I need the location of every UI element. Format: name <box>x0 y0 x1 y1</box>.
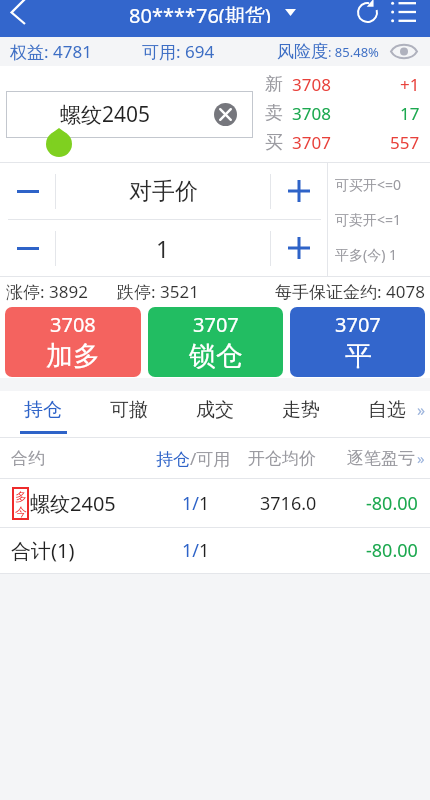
staticText: 开仓均价 <box>248 448 316 469</box>
staticText: 3707 <box>193 311 239 338</box>
staticText: 557 <box>390 131 420 154</box>
staticText: 螺纹2405 <box>60 100 151 129</box>
staticText: 每手保证金约: 4078 <box>275 280 425 303</box>
staticText: 跌停: 3521 <box>117 280 199 303</box>
staticText: 1/1 <box>182 538 210 563</box>
button[interactable]: Increase <box>271 163 327 219</box>
staticText: 80****76(期货) <box>129 2 271 23</box>
staticText: 3707 <box>292 131 331 154</box>
staticText: 1 <box>156 233 170 264</box>
staticText: 对手价 <box>129 177 198 206</box>
button[interactable]: Back <box>0 0 40 25</box>
staticText: 3708 <box>292 73 331 96</box>
staticText: 螺纹2405 <box>30 490 116 517</box>
staticText: 新 <box>265 73 283 96</box>
button[interactable]: 80****76(期货) <box>129 2 296 23</box>
staticText: 合计(1) <box>11 537 75 564</box>
staticText: 合约 <box>11 448 45 469</box>
staticText: 买 <box>265 131 283 154</box>
button[interactable]: 走势 <box>258 391 344 437</box>
button[interactable]: 螺纹2405 <box>6 91 253 138</box>
staticText: 持仓/可用 <box>156 447 231 470</box>
button[interactable]: 1 <box>56 220 270 276</box>
staticText: 锁仓 <box>189 339 243 373</box>
staticText: 逐笔盈亏 <box>347 448 415 469</box>
staticText: 涨停: 3892 <box>6 280 88 303</box>
button[interactable]: 成交 <box>172 391 258 437</box>
staticText: 持仓 <box>24 398 62 422</box>
button[interactable]: Increase <box>271 220 327 276</box>
staticText: 可撤 <box>110 398 148 422</box>
staticText: 3716.0 <box>260 491 317 516</box>
button[interactable]: Menu <box>380 0 426 24</box>
button[interactable]: Clear <box>214 103 237 126</box>
button[interactable]: 可撤 <box>86 391 172 437</box>
staticText: 成交 <box>196 398 234 422</box>
button[interactable]: 买 <box>265 128 430 157</box>
staticText: 平多(今) 1 <box>335 245 398 264</box>
staticText: 可卖开<=1 <box>335 210 402 229</box>
button[interactable]: 3707 <box>148 307 283 377</box>
button[interactable]: Decrease <box>0 220 55 276</box>
staticText: -80.00 <box>366 491 418 516</box>
staticText: 17 <box>400 102 420 125</box>
button[interactable]: 持仓 <box>0 391 86 437</box>
staticText: 自选 <box>368 398 406 422</box>
staticText: 权益: 4781 <box>10 40 92 63</box>
button[interactable]: 自选 <box>344 391 430 437</box>
staticText: 平 <box>345 339 372 373</box>
button[interactable]: 卖 <box>265 99 430 128</box>
button[interactable]: Refresh <box>355 0 380 24</box>
staticText: 1/1 <box>182 491 210 516</box>
staticText: 3708 <box>50 311 96 338</box>
button[interactable]: Toggle balance visibility <box>386 37 422 66</box>
staticText: 多 <box>15 489 27 504</box>
button[interactable]: Decrease <box>0 163 55 219</box>
staticText: 风险度: 85.48% <box>277 41 379 62</box>
button[interactable]: 3707 <box>290 307 425 377</box>
staticText: 卖 <box>265 102 283 125</box>
staticText: +1 <box>400 73 420 96</box>
button[interactable]: 3708 <box>5 307 141 377</box>
button[interactable]: 新 <box>265 70 430 99</box>
staticText: 3708 <box>292 102 331 125</box>
staticText: 加多 <box>46 339 100 373</box>
staticText: 今 <box>15 504 27 519</box>
staticText: 可买开<=0 <box>335 175 402 194</box>
button[interactable]: 多 <box>0 479 430 527</box>
staticText: » <box>417 448 425 468</box>
button[interactable]: 对手价 <box>56 163 270 219</box>
staticText: -80.00 <box>366 538 418 563</box>
staticText: 可用: 694 <box>142 40 215 63</box>
staticText: 走势 <box>282 398 320 422</box>
staticText: » <box>417 399 426 421</box>
staticText: 3707 <box>335 311 381 338</box>
